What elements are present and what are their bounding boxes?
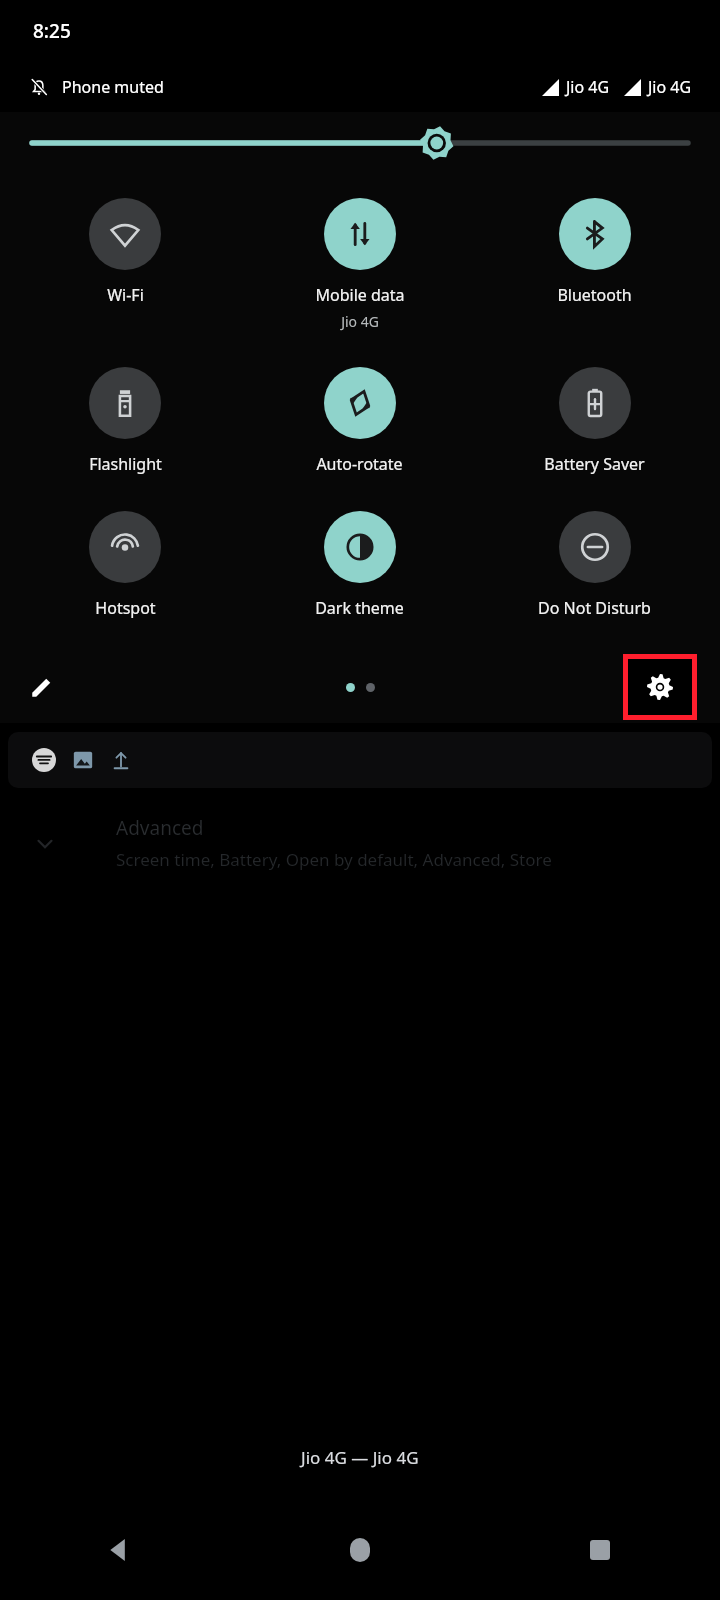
staticText: Battery Saver	[544, 453, 645, 475]
staticText: Jio 4G	[341, 312, 379, 331]
staticText: Phone muted	[62, 76, 164, 98]
staticText: Flashlight	[89, 453, 162, 475]
staticText: 8:25	[33, 18, 71, 44]
staticText: Wi-Fi	[107, 284, 144, 306]
staticText: Jio 4G	[648, 76, 692, 98]
staticText: Auto-rotate	[316, 453, 403, 475]
button[interactable]: Flashlight	[8, 365, 242, 477]
button[interactable]: Back	[0, 1500, 240, 1600]
button[interactable]: Mobile data	[242, 196, 477, 333]
button[interactable]: Bluetooth	[477, 196, 712, 308]
button[interactable]: Battery Saver	[477, 365, 712, 477]
staticText: Screen time, Battery, Open by default, A…	[116, 848, 552, 871]
button[interactable]: Wi-Fi	[8, 196, 242, 308]
staticText: Hotspot	[95, 597, 156, 619]
staticText: Dark theme	[315, 597, 404, 619]
button[interactable]	[8, 732, 712, 788]
button[interactable]: Settings	[628, 659, 692, 715]
button[interactable]: Recents	[480, 1500, 720, 1600]
staticText: Jio 4G	[566, 76, 610, 98]
staticText: Mobile data	[315, 284, 405, 306]
staticText: Jio 4G — Jio 4G	[301, 1446, 419, 1469]
button[interactable]: Hotspot	[8, 509, 242, 621]
staticText: Do Not Disturb	[538, 597, 651, 619]
button[interactable]: Edit tiles	[18, 663, 66, 711]
staticText: Bluetooth	[557, 284, 632, 306]
button[interactable]: Auto-rotate	[242, 365, 477, 477]
button[interactable]: Dark theme	[242, 509, 477, 621]
button[interactable]: Do Not Disturb	[477, 509, 712, 621]
button[interactable]: Home	[240, 1500, 480, 1600]
staticText: Advanced	[116, 815, 204, 841]
